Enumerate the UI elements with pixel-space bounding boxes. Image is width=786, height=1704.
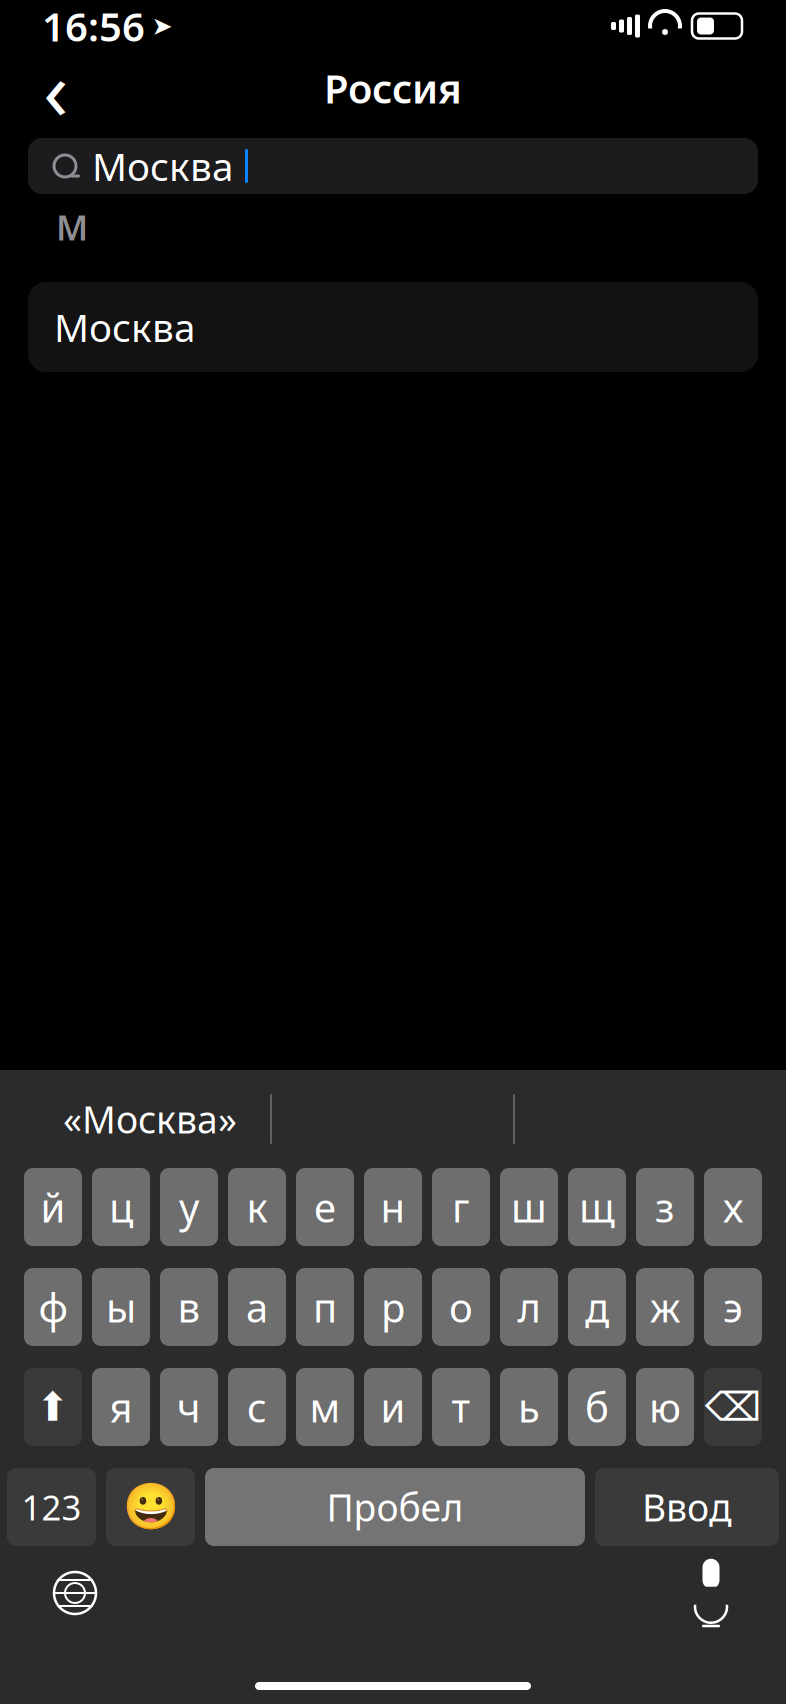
button[interactable]: б: [568, 1368, 626, 1446]
staticText: р: [381, 1280, 405, 1333]
staticText: ц: [109, 1180, 133, 1233]
button[interactable]: ч: [160, 1368, 218, 1446]
staticText: М: [56, 204, 88, 250]
staticText: п: [313, 1280, 337, 1333]
button[interactable]: Emoji: [106, 1468, 195, 1546]
button[interactable]: ц: [92, 1168, 150, 1246]
staticText: н: [380, 1180, 405, 1233]
staticText: щ: [579, 1180, 615, 1233]
button[interactable]: й: [24, 1168, 82, 1246]
button[interactable]: Ввод: [595, 1468, 779, 1546]
staticText: и: [380, 1380, 405, 1433]
button[interactable]: э: [704, 1268, 762, 1346]
button[interactable]: ю: [636, 1368, 694, 1446]
staticText: о: [449, 1280, 473, 1333]
staticText: Россия: [324, 61, 462, 114]
staticText: Москва: [92, 140, 233, 192]
staticText: в: [177, 1280, 200, 1333]
button[interactable]: Dictation: [676, 1556, 746, 1630]
staticText: 123: [21, 1484, 81, 1530]
staticText: ш: [511, 1180, 547, 1233]
button[interactable]: Backspace: [704, 1368, 762, 1446]
button[interactable]: м: [296, 1368, 354, 1446]
button[interactable]: н: [364, 1168, 422, 1246]
staticText: 16:56: [42, 0, 145, 52]
staticText: ж: [650, 1280, 680, 1333]
button[interactable]: о: [432, 1268, 490, 1346]
button[interactable]: 123: [7, 1468, 96, 1546]
staticText: г: [452, 1180, 470, 1233]
button[interactable]: ф: [24, 1268, 82, 1346]
button[interactable]: д: [568, 1268, 626, 1346]
button[interactable]: Москва: [28, 138, 758, 194]
button[interactable]: п: [296, 1268, 354, 1346]
button[interactable]: г: [432, 1168, 490, 1246]
staticText: ‹: [43, 33, 69, 143]
button[interactable]: ш: [500, 1168, 558, 1246]
button[interactable]: в: [160, 1268, 218, 1346]
button[interactable]: с: [228, 1368, 286, 1446]
staticText: з: [655, 1180, 675, 1233]
staticText: я: [109, 1380, 132, 1433]
staticText: ю: [649, 1380, 681, 1433]
staticText: ⬆: [36, 1384, 70, 1430]
staticText: «Москва»: [63, 1094, 237, 1144]
button[interactable]: а: [228, 1268, 286, 1346]
staticText: х: [723, 1180, 743, 1233]
staticText: м: [309, 1380, 340, 1433]
staticText: 😀: [122, 1481, 178, 1533]
staticText: э: [723, 1280, 743, 1333]
staticText: ➤: [151, 12, 172, 40]
staticText: й: [40, 1180, 65, 1233]
button[interactable]: е: [296, 1168, 354, 1246]
button[interactable]: р: [364, 1268, 422, 1346]
staticText: ф: [38, 1280, 67, 1333]
button[interactable]: ы: [92, 1268, 150, 1346]
staticText: у: [179, 1180, 199, 1233]
staticText: ч: [177, 1380, 201, 1433]
button[interactable]: х: [704, 1168, 762, 1246]
button[interactable]: у: [160, 1168, 218, 1246]
button[interactable]: Next keyboard: [40, 1558, 110, 1628]
button[interactable]: Москва: [28, 282, 758, 372]
staticText: л: [517, 1280, 540, 1333]
button[interactable]: «Москва»: [30, 1082, 270, 1156]
button[interactable]: Пробел: [205, 1468, 585, 1546]
staticText: т: [451, 1380, 470, 1433]
staticText: с: [247, 1380, 267, 1433]
button[interactable]: Shift: [24, 1368, 82, 1446]
button[interactable]: з: [636, 1168, 694, 1246]
staticText: а: [246, 1280, 268, 1333]
button[interactable]: я: [92, 1368, 150, 1446]
button[interactable]: Back: [28, 60, 84, 116]
button[interactable]: щ: [568, 1168, 626, 1246]
staticText: е: [314, 1180, 336, 1233]
button[interactable]: к: [228, 1168, 286, 1246]
staticText: к: [246, 1180, 267, 1233]
button[interactable]: л: [500, 1268, 558, 1346]
staticText: Пробел: [326, 1482, 463, 1532]
button[interactable]: т: [432, 1368, 490, 1446]
staticText: ⌫: [704, 1384, 761, 1430]
staticText: б: [585, 1380, 609, 1433]
staticText: д: [585, 1280, 609, 1333]
staticText: Москва: [54, 301, 195, 353]
staticText: Ввод: [642, 1482, 732, 1532]
button[interactable]: ж: [636, 1268, 694, 1346]
button[interactable]: и: [364, 1368, 422, 1446]
button[interactable]: ь: [500, 1368, 558, 1446]
staticText: ы: [106, 1280, 136, 1333]
staticText: ь: [518, 1380, 540, 1433]
